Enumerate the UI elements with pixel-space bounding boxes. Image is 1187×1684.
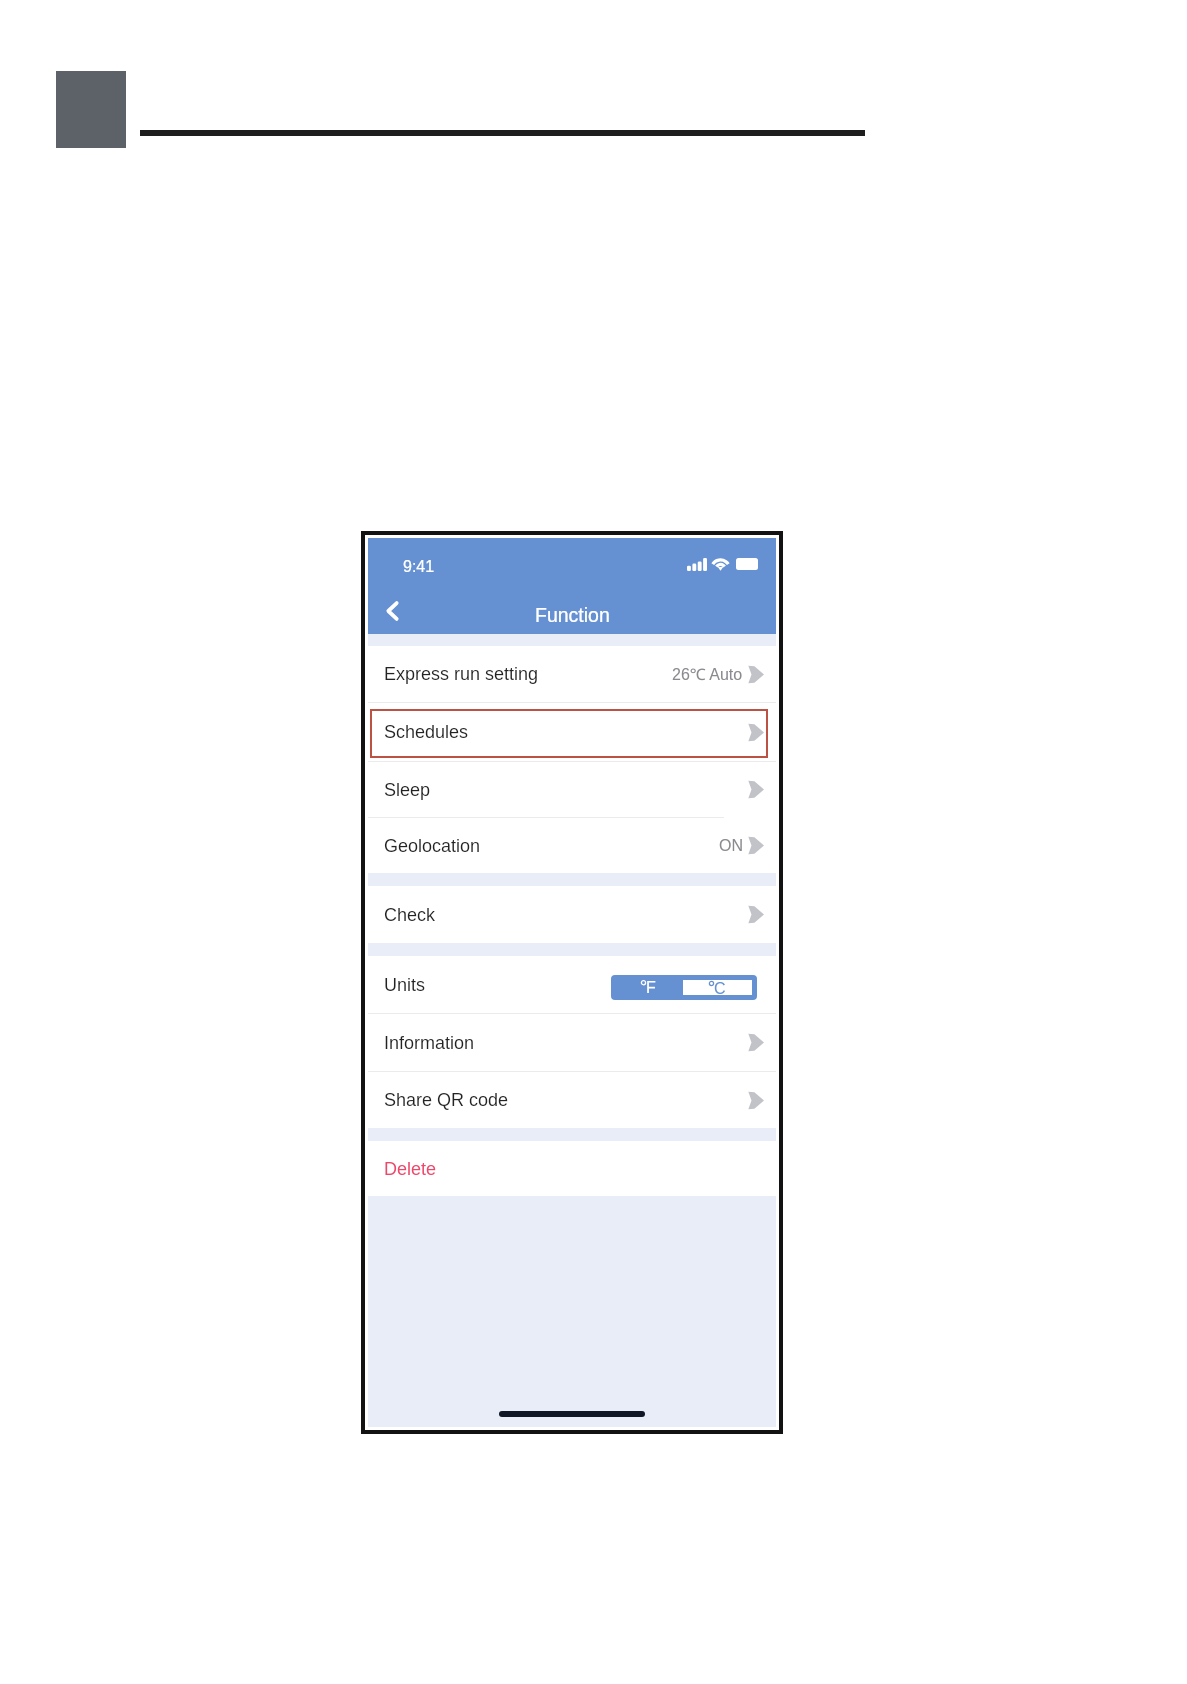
button[interactable]: Celsius [683, 980, 752, 995]
staticText: 26℃ Auto [672, 663, 743, 685]
staticText: Express run setting [384, 664, 539, 684]
staticText: Information [384, 1033, 475, 1053]
staticText: Schedules [384, 722, 469, 742]
staticText: Units [384, 975, 426, 995]
button[interactable]: Express run setting [368, 646, 776, 702]
button[interactable]: Share QR code [368, 1072, 776, 1128]
button[interactable]: Units [368, 956, 776, 1013]
button[interactable]: Information [368, 1014, 776, 1071]
button[interactable]: Geolocation [368, 818, 776, 873]
button[interactable]: Back [378, 595, 406, 627]
staticText: Sleep [384, 780, 431, 800]
staticText: Function [535, 604, 610, 626]
staticText: Share QR code [384, 1090, 509, 1110]
staticText: F [646, 979, 656, 997]
staticText: Delete [384, 1159, 437, 1179]
button[interactable]: Fahrenheit [615, 975, 682, 1000]
button[interactable]: Check [368, 886, 776, 943]
button[interactable]: Schedules [368, 703, 776, 761]
button[interactable]: Sleep [368, 762, 776, 817]
staticText: ON [719, 837, 743, 855]
staticText: 9:41 [403, 558, 435, 576]
staticText: Check [384, 905, 436, 925]
staticText: Geolocation [384, 836, 481, 856]
staticText: C [714, 980, 726, 995]
button[interactable]: Delete [368, 1141, 776, 1196]
